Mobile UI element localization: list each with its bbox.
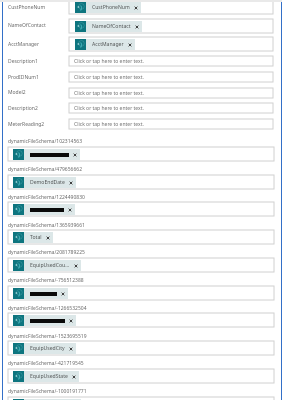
button[interactable]: Click or tap here to enter text. xyxy=(69,56,273,66)
staticText: Click or tap here to enter text. xyxy=(74,121,144,128)
button[interactable]: Remove xyxy=(8,202,274,216)
other: Remove xyxy=(128,43,132,47)
staticText: EquipUsedCou... xyxy=(30,262,70,269)
button[interactable]: CustPhoneNum xyxy=(69,0,273,14)
staticText: DemoEndDate xyxy=(30,179,65,186)
staticText: ProdIDNum1 xyxy=(8,74,39,81)
button[interactable]: AcctManager xyxy=(75,39,135,50)
other: Remove xyxy=(69,181,73,185)
button[interactable]: Remove xyxy=(8,147,274,161)
staticText: dynamicFileSchema/-1266532504 xyxy=(8,305,87,312)
button[interactable]: EquipUsedCou... xyxy=(8,258,274,272)
other: Remove xyxy=(68,208,72,212)
button[interactable]: Remove xyxy=(8,313,274,327)
button[interactable]: Click or tap here to enter text. xyxy=(69,119,273,129)
staticText: Click or tap here to enter text. xyxy=(74,90,144,97)
other: Remove xyxy=(135,25,139,29)
other: Remove xyxy=(72,375,76,379)
button[interactable]: Total xyxy=(13,232,53,243)
button[interactable]: EquipUsedState xyxy=(8,369,274,383)
staticText: NameOfContact xyxy=(8,22,46,29)
button[interactable]: Remove xyxy=(13,315,76,326)
staticText: dynamicFileSchema/-421719545 xyxy=(8,360,84,367)
button[interactable]: DemoEndDate xyxy=(8,175,274,189)
button[interactable]: Remove xyxy=(13,204,75,215)
button[interactable]: NameOfContact xyxy=(69,19,273,33)
button[interactable]: Remove xyxy=(13,149,80,160)
button[interactable]: EquipUsedState xyxy=(13,371,79,382)
staticText: dynamicFileSchema/479656662 xyxy=(8,166,83,173)
button[interactable]: AcctManager xyxy=(69,37,273,51)
staticText: CustPhoneNum xyxy=(8,4,46,11)
staticText: MeterReading2 xyxy=(8,121,45,128)
staticText: dynamicFileSchema/-756512388 xyxy=(8,277,84,284)
staticText: Model2 xyxy=(8,89,26,96)
button[interactable]: EquipUsedCity xyxy=(13,343,76,354)
staticText: Description2 xyxy=(8,105,38,112)
staticText: Click or tap here to enter text. xyxy=(74,58,144,65)
button[interactable]: EquipUsedCity xyxy=(8,341,274,355)
button[interactable]: Remove xyxy=(8,286,274,300)
button[interactable]: Click or tap here to enter text. xyxy=(69,72,273,82)
button[interactable]: Remove xyxy=(8,397,274,400)
staticText: Click or tap here to enter text. xyxy=(74,105,144,112)
button[interactable]: Click or tap here to enter text. xyxy=(69,88,273,98)
other: Remove xyxy=(134,6,138,10)
staticText: dynamicFileSchema/-1000191771 xyxy=(8,388,87,395)
button[interactable]: CustPhoneNum xyxy=(75,2,141,13)
button[interactable]: Remove xyxy=(13,399,81,400)
button[interactable]: DemoEndDate xyxy=(13,177,76,188)
staticText: NameOfContact xyxy=(92,23,131,30)
button[interactable]: Total xyxy=(8,230,274,244)
button[interactable]: EquipUsedCou... xyxy=(13,260,81,271)
staticText: dynamicFileSchema/1224490830 xyxy=(8,194,85,201)
staticText: dynamicFileSchema/-1523695519 xyxy=(8,333,87,340)
staticText: Click or tap here to enter text. xyxy=(74,74,144,81)
button[interactable]: Click or tap here to enter text. xyxy=(69,103,273,113)
other: Remove xyxy=(74,264,78,268)
staticText: CustPhoneNum xyxy=(92,4,130,11)
staticText: dynamicFileSchema/102314563 xyxy=(8,138,83,145)
other: Remove xyxy=(69,347,73,351)
other: Remove xyxy=(73,153,77,157)
staticText: EquipUsedState xyxy=(30,373,68,380)
staticText: AcctManager xyxy=(8,41,39,48)
button[interactable]: NameOfContact xyxy=(75,21,142,32)
staticText: dynamicFileSchema/2081789225 xyxy=(8,249,85,256)
staticText: EquipUsedCity xyxy=(30,345,65,352)
other: Remove xyxy=(61,292,65,296)
button[interactable]: Remove xyxy=(13,288,68,299)
other: Remove xyxy=(46,236,50,240)
staticText: AcctManager xyxy=(92,41,124,48)
staticText: dynamicFileSchema/1365939661 xyxy=(8,222,85,229)
staticText: Description1 xyxy=(8,58,38,65)
staticText: Total xyxy=(30,234,42,241)
other: Remove xyxy=(69,319,73,323)
